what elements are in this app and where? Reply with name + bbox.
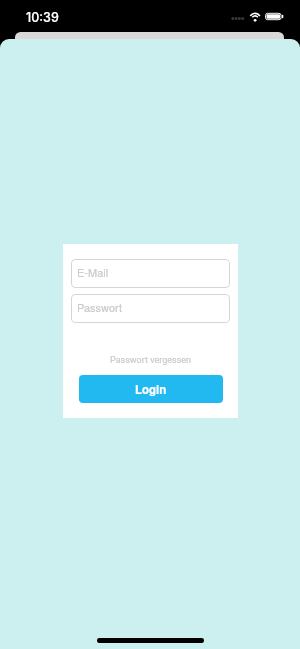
button[interactable]: Passwort vergessen [104,352,198,369]
staticText: 10:39 [26,10,59,25]
other: Battery [265,12,284,21]
button[interactable]: E-Mail [71,259,230,288]
staticText: E-Mail [77,264,109,280]
staticText: Login [135,381,167,397]
staticText: Passwort vergessen [110,355,192,366]
button[interactable]: Login [79,375,223,403]
staticText: Passwort [77,299,123,315]
other: Wi-Fi [249,12,262,22]
button[interactable]: Passwort [71,294,230,323]
other: Cellular signal [230,16,246,21]
